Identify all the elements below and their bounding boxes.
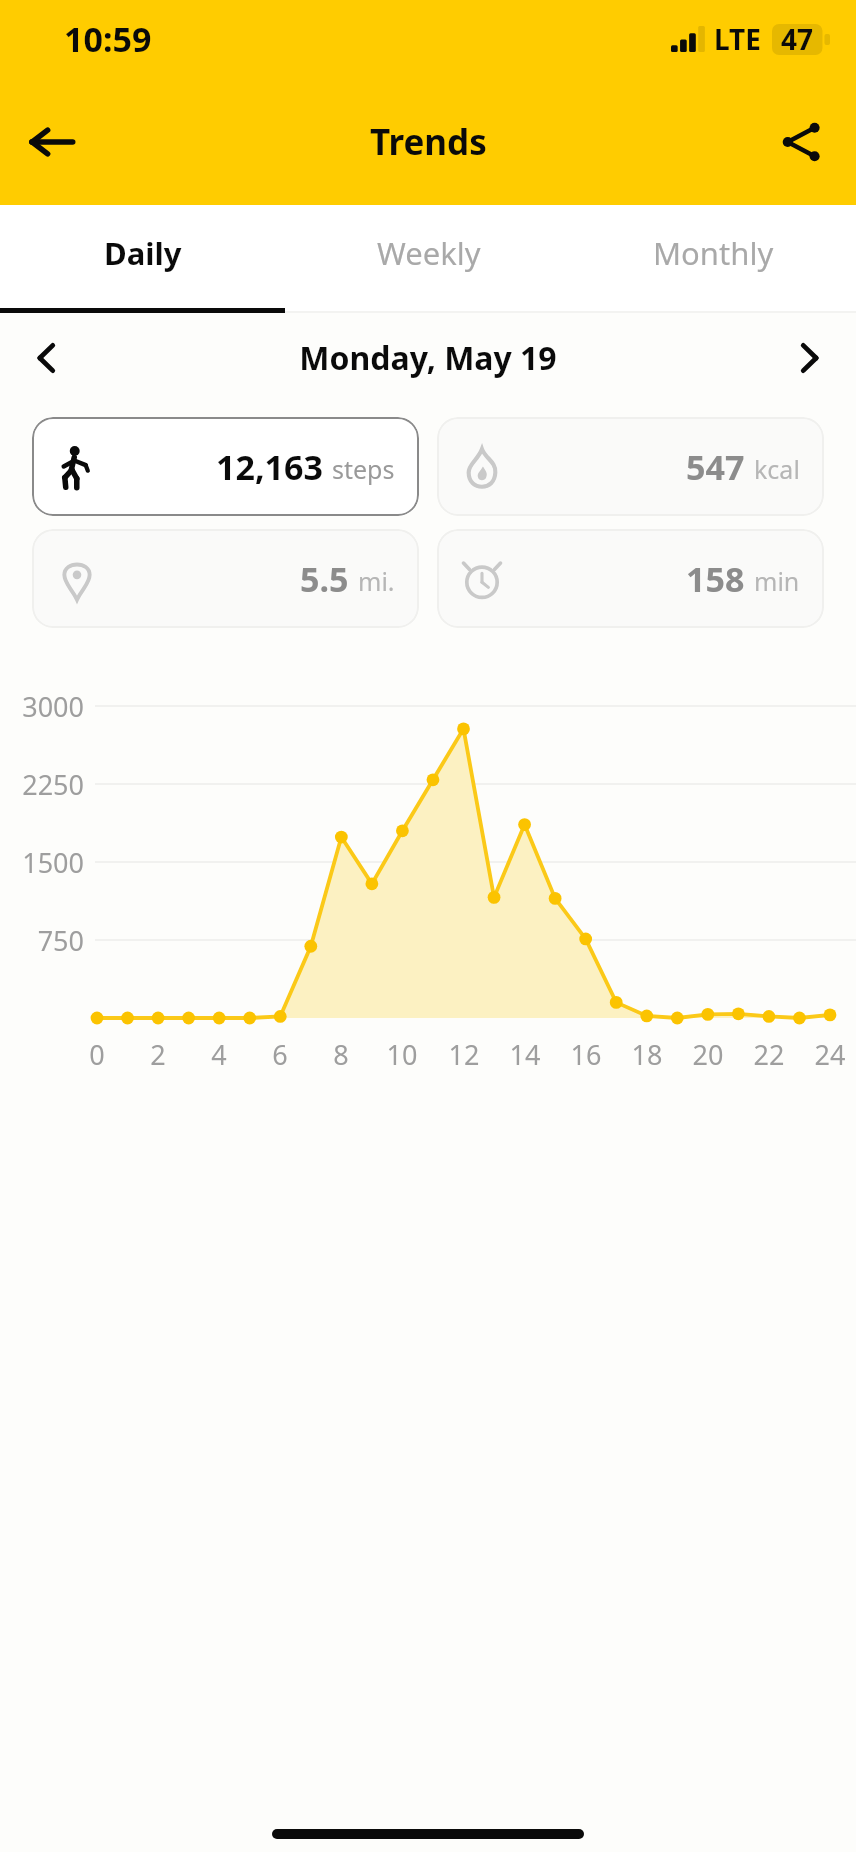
button[interactable]: Daily	[0, 205, 286, 313]
staticText: 12,163	[216, 444, 323, 490]
button[interactable]: 158	[437, 529, 824, 628]
staticText: 547	[686, 444, 745, 490]
staticText: 12	[442, 1036, 486, 1073]
staticText: Monthly	[653, 232, 774, 274]
staticText: 16	[564, 1036, 608, 1073]
button[interactable]: Previous day	[12, 323, 82, 393]
staticText: Trends	[370, 118, 487, 166]
staticText: 6	[258, 1036, 302, 1073]
staticText: 22	[747, 1036, 791, 1073]
staticText: 0	[75, 1036, 119, 1073]
staticText: Weekly	[377, 232, 481, 274]
button[interactable]: Share	[766, 106, 838, 178]
staticText: 4	[197, 1036, 241, 1073]
button[interactable]: Weekly	[286, 205, 571, 313]
button[interactable]: 5.5	[32, 529, 419, 628]
staticText: 158	[686, 556, 745, 602]
staticText: 750	[16, 922, 84, 959]
staticText: 2	[136, 1036, 180, 1073]
staticText: 8	[319, 1036, 363, 1073]
staticText: 10	[380, 1036, 424, 1073]
staticText: 3000	[16, 688, 84, 725]
button[interactable]: Back	[16, 106, 88, 178]
staticText: 47	[781, 20, 814, 58]
staticText: 5.5	[300, 556, 349, 602]
button[interactable]: Next day	[774, 323, 844, 393]
staticText: 20	[686, 1036, 730, 1073]
staticText: LTE	[714, 20, 761, 58]
staticText: 10:59	[64, 16, 152, 62]
staticText: 2250	[16, 766, 84, 803]
staticText: 1500	[16, 844, 84, 881]
staticText: kcal	[754, 452, 800, 486]
staticText: Monday, May 19	[82, 336, 774, 380]
staticText: 14	[503, 1036, 547, 1073]
staticText: steps	[332, 452, 395, 486]
staticText: Daily	[104, 232, 182, 274]
button[interactable]: Monthly	[571, 205, 856, 313]
button[interactable]: 12,163	[32, 417, 419, 516]
staticText: 24	[808, 1036, 852, 1073]
button[interactable]: 547	[437, 417, 824, 516]
staticText: 18	[625, 1036, 669, 1073]
staticText: min	[754, 564, 800, 598]
staticText: mi.	[358, 564, 395, 598]
